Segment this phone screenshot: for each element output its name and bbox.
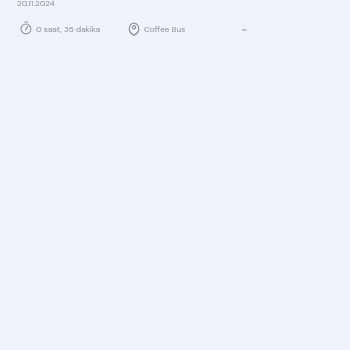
button[interactable]: Tutar [238, 21, 251, 37]
staticText: 20.11.2024 [17, 0, 55, 9]
staticText: 0 saat, 35 dakika [36, 24, 101, 35]
button[interactable]: Konum [126, 21, 186, 37]
staticText: Coffee Bus [144, 24, 186, 35]
button[interactable]: 20.11.2024 [0, 0, 350, 50]
button[interactable]: Süre [18, 21, 101, 37]
